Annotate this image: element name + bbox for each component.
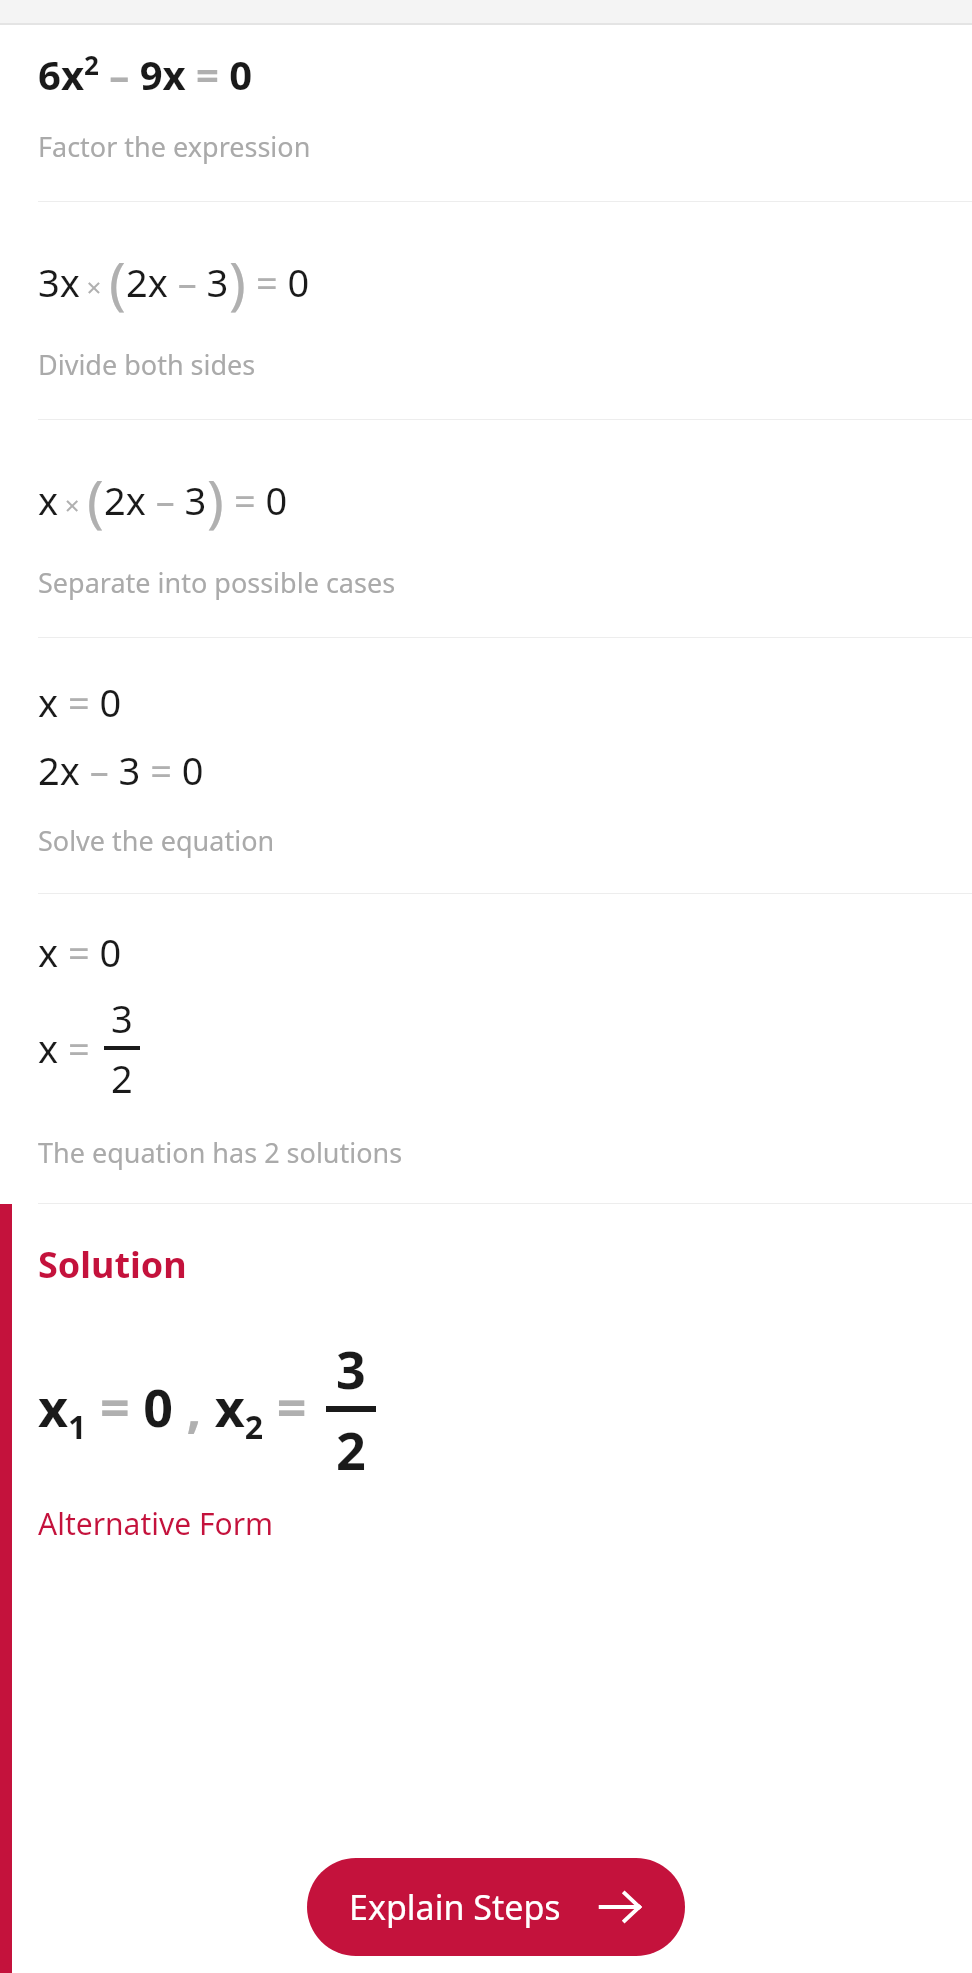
staticText: 2 xyxy=(111,1052,133,1104)
staticText: 3x × xyxy=(38,256,109,308)
staticText: The equation has 2 solutions xyxy=(38,1134,403,1171)
staticText: Divide both sides xyxy=(38,346,256,383)
staticText: x × xyxy=(38,474,87,526)
button[interactable]: Explain Steps xyxy=(307,1858,685,1956)
staticText: Alternative Form xyxy=(38,1503,274,1544)
staticText: x = 0 xyxy=(38,926,122,978)
staticText: 2x – 3 xyxy=(104,474,207,526)
staticText: Separate into possible cases xyxy=(38,564,396,601)
staticText: 6x2 – 9x = 0 xyxy=(38,47,253,102)
staticText: 2x – 3 xyxy=(126,256,229,308)
staticText: = 0 xyxy=(224,474,288,526)
staticText: = 0 xyxy=(246,256,310,308)
staticText: x = 0 xyxy=(38,676,122,728)
other: Go to explanation xyxy=(597,1884,643,1930)
staticText: ( xyxy=(87,462,104,538)
staticText: ( xyxy=(109,244,126,320)
staticText: 2 xyxy=(336,1414,366,1485)
staticText: ) xyxy=(207,462,224,538)
staticText: x = xyxy=(38,1022,100,1074)
staticText: x1 = 0 , x2 = xyxy=(38,1371,320,1448)
staticText: ) xyxy=(229,244,246,320)
staticText: Explain Steps xyxy=(349,1884,561,1930)
staticText: Solution xyxy=(38,1240,187,1289)
staticText: 3 xyxy=(111,992,133,1044)
staticText: Factor the expression xyxy=(38,128,311,165)
staticText: 2x – 3 = 0 xyxy=(38,744,204,796)
staticText: 3 xyxy=(336,1333,366,1404)
staticText: Solve the equation xyxy=(38,822,275,859)
